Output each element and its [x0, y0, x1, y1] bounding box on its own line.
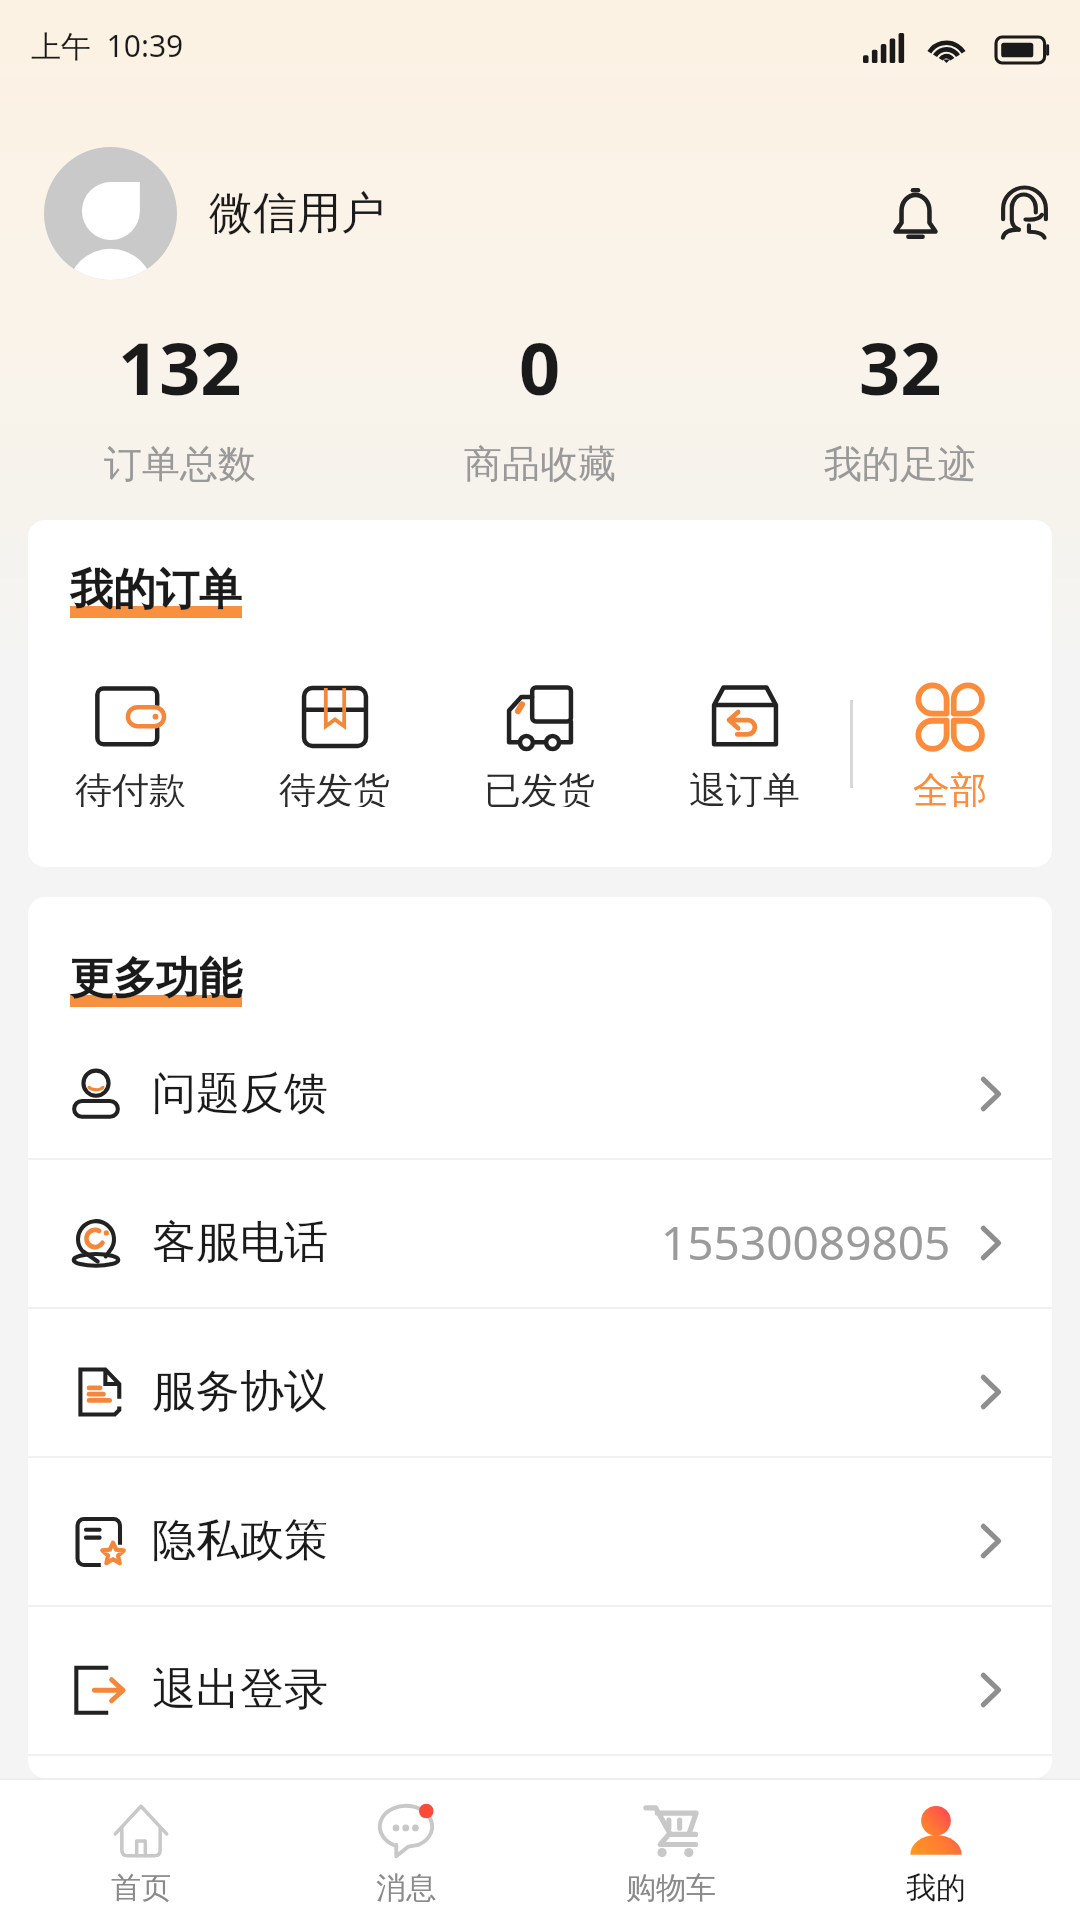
staticText: 退出登录 [152, 1662, 328, 1717]
staticText: 问题反馈 [152, 1066, 328, 1121]
staticText: 待发货 [279, 767, 390, 807]
staticText: 购物车 [626, 1869, 716, 1907]
button[interactable]: 问题反馈 [28, 1011, 1052, 1158]
button[interactable]: 购物车 [538, 1793, 803, 1907]
button[interactable]: 退出登录 [28, 1607, 1052, 1754]
button[interactable]: 我的 [803, 1793, 1068, 1907]
button[interactable]: 132 [0, 318, 360, 488]
staticText: 15530089805 [661, 1211, 951, 1274]
staticText: 商品收藏 [464, 440, 616, 488]
staticText: 上午 10:39 [31, 25, 184, 66]
staticText: 已发货 [484, 767, 595, 807]
staticText: 服务协议 [152, 1364, 328, 1419]
button[interactable]: 首页 [8, 1793, 273, 1907]
button[interactable]: 待付款 [28, 683, 232, 807]
button[interactable]: 服务协议 [28, 1309, 1052, 1456]
staticText: 消息 [376, 1869, 436, 1907]
button[interactable]: 隐私政策 [28, 1458, 1052, 1605]
staticText: 微信用户 [209, 186, 385, 241]
staticText: 我的 [906, 1869, 966, 1907]
staticText: 订单总数 [104, 440, 256, 488]
button[interactable]: 全部 [847, 683, 1052, 807]
staticText: 首页 [111, 1869, 171, 1907]
button[interactable]: 客服电话 [28, 1160, 1052, 1307]
staticText: 退订单 [689, 767, 800, 807]
button[interactable]: 0 [360, 318, 720, 488]
staticText: 客服电话 [152, 1215, 328, 1270]
button[interactable]: Customer service [986, 175, 1062, 251]
button[interactable]: 待发货 [232, 683, 437, 807]
staticText: 隐私政策 [152, 1513, 328, 1568]
staticText: 我的足迹 [824, 440, 976, 488]
button[interactable]: Notifications [877, 175, 953, 251]
button[interactable]: 退订单 [642, 683, 847, 807]
button[interactable]: 32 [720, 318, 1080, 488]
staticText: 0 [519, 318, 561, 416]
staticText: 全部 [913, 767, 987, 807]
button[interactable]: 已发货 [437, 683, 642, 807]
staticText: 待付款 [75, 767, 186, 807]
staticText: 我的订单 [70, 563, 242, 617]
staticText: 更多功能 [70, 952, 242, 1006]
staticText: 132 [118, 318, 242, 416]
button[interactable]: 消息 [273, 1793, 538, 1907]
staticText: 32 [859, 318, 942, 416]
